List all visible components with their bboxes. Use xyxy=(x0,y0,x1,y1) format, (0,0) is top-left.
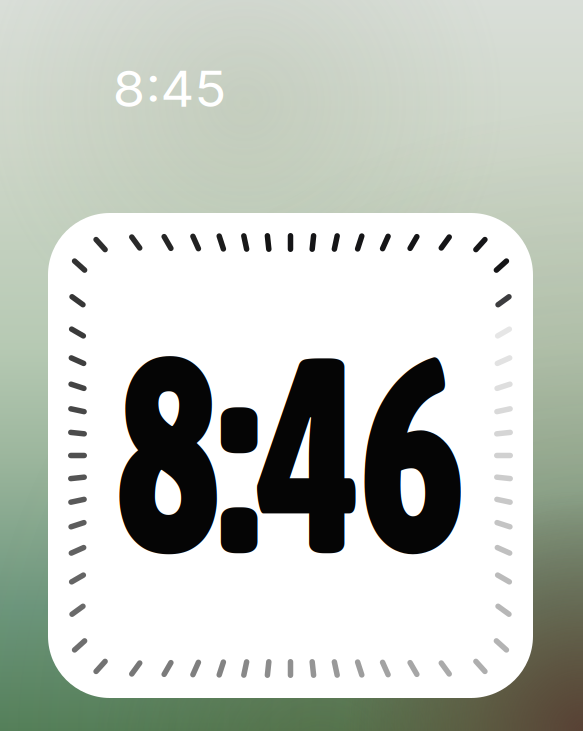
staticText: 8:45 xyxy=(116,59,223,119)
staticText: 8:46 xyxy=(71,294,510,611)
